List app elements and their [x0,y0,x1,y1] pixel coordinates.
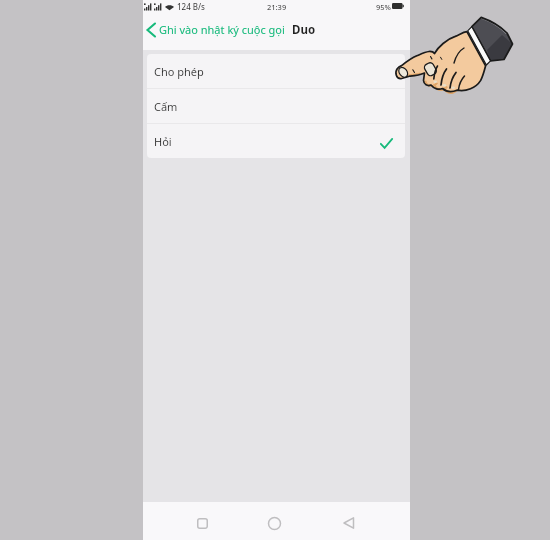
staticText: 95% [376,2,391,12]
staticText: 21:39 [267,2,287,12]
staticText: Duo [292,22,316,38]
staticText: Ghi vào nhật ký cuộc gọi [159,22,285,37]
staticText: Cấm [154,99,178,114]
button[interactable]: Cấm [147,89,405,123]
button[interactable]: Ghi vào nhật ký cuộc gọi [143,12,410,47]
button[interactable] [191,512,213,534]
button[interactable] [338,512,360,534]
staticText: 124 B/s [177,1,206,12]
staticText: Hỏi [154,134,172,149]
button[interactable] [263,512,285,534]
staticText: Cho phép [154,64,204,79]
button[interactable]: Cho phép [147,54,405,88]
button[interactable]: Hỏi [147,124,405,158]
